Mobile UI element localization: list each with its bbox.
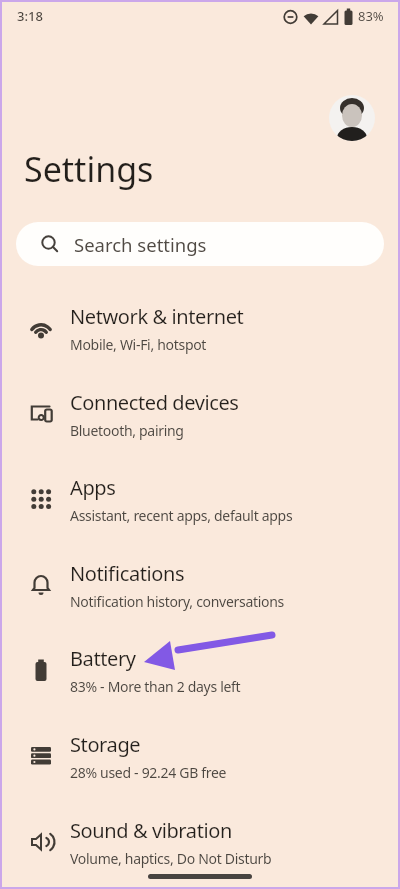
button[interactable]: Network & internet: [0, 285, 400, 371]
staticText: Notification history, conversations: [70, 592, 284, 611]
staticText: Assistant, recent apps, default apps: [70, 506, 293, 525]
button[interactable]: [329, 95, 375, 141]
button[interactable]: Storage: [0, 713, 400, 799]
button[interactable]: Apps: [0, 456, 400, 542]
staticText: Settings: [24, 146, 154, 192]
button[interactable]: Search settings: [16, 222, 384, 266]
staticText: Search settings: [74, 232, 207, 257]
staticText: Mobile, Wi-Fi, hotspot: [70, 335, 207, 354]
staticText: Storage: [70, 731, 141, 758]
staticText: 83% - More than 2 days left: [70, 677, 241, 696]
button[interactable]: Battery: [0, 627, 400, 713]
staticText: Battery: [70, 645, 136, 672]
staticText: Volume, haptics, Do Not Disturb: [70, 849, 272, 868]
staticText: Network & internet: [70, 303, 244, 330]
button[interactable]: Notifications: [0, 542, 400, 628]
staticText: Sound & vibration: [70, 817, 232, 844]
staticText: 3:18: [17, 7, 43, 25]
staticText: Connected devices: [70, 389, 239, 416]
staticText: 28% used - 92.24 GB free: [70, 763, 227, 782]
staticText: 83%: [358, 7, 384, 25]
button[interactable]: Sound & vibration: [0, 799, 400, 885]
staticText: Bluetooth, pairing: [70, 421, 184, 440]
button[interactable]: Connected devices: [0, 371, 400, 457]
staticText: Notifications: [70, 560, 185, 587]
staticText: Apps: [70, 474, 116, 501]
